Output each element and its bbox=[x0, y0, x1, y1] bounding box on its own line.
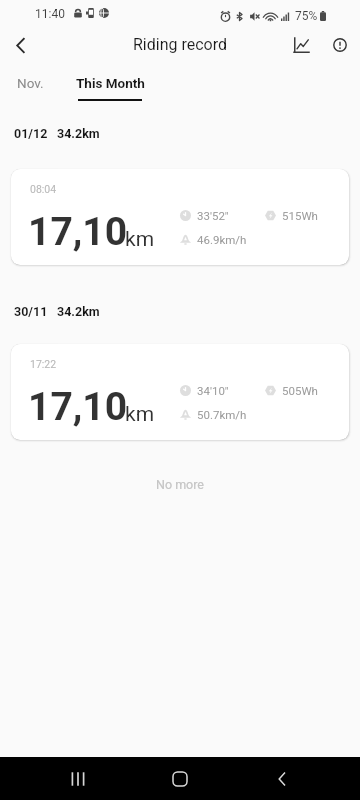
button[interactable]: Home bbox=[156, 757, 204, 800]
staticText: This Month bbox=[76, 75, 145, 91]
button[interactable]: Nov. bbox=[0, 62, 60, 106]
staticText: km bbox=[125, 402, 155, 427]
staticText: 11:40 bbox=[35, 7, 65, 21]
staticText: 33'52" bbox=[197, 209, 229, 222]
button[interactable]: Back bbox=[258, 757, 306, 800]
staticText: 34'10" bbox=[197, 384, 229, 397]
button[interactable]: Statistics bbox=[283, 28, 319, 62]
staticText: 30/11 bbox=[14, 304, 48, 319]
staticText: 46.9km/h bbox=[197, 233, 247, 246]
staticText: Nov. bbox=[17, 75, 44, 91]
staticText: 17:22 bbox=[30, 358, 57, 370]
staticText: km bbox=[125, 227, 155, 252]
button[interactable]: 17:22 bbox=[11, 344, 349, 440]
staticText: 50.7km/h bbox=[197, 408, 247, 421]
staticText: Riding record bbox=[133, 35, 228, 54]
staticText: No more bbox=[0, 477, 360, 492]
staticText: 01/12 bbox=[14, 126, 48, 141]
staticText: 505Wh bbox=[282, 384, 318, 397]
button[interactable]: Back bbox=[0, 28, 40, 62]
button[interactable]: Info bbox=[322, 28, 358, 62]
staticText: 17,10 bbox=[28, 379, 128, 436]
button[interactable]: This Month bbox=[64, 62, 156, 106]
staticText: 34.2km bbox=[57, 126, 100, 141]
staticText: 08:04 bbox=[30, 183, 57, 195]
staticText: 34.2km bbox=[57, 304, 100, 319]
staticText: 515Wh bbox=[282, 209, 318, 222]
button[interactable]: 08:04 bbox=[11, 169, 349, 265]
staticText: 75% bbox=[295, 9, 318, 23]
button[interactable]: Recents bbox=[54, 757, 102, 800]
staticText: 17,10 bbox=[28, 204, 128, 261]
